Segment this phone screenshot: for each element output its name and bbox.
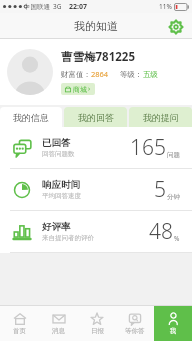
staticText: 问题 (167, 151, 180, 159)
staticText: 11% (159, 2, 172, 11)
staticText: 165 (130, 133, 166, 162)
button[interactable]: Settings (166, 17, 185, 36)
button[interactable]: 日报 (78, 306, 116, 341)
button[interactable]: 我 (154, 306, 192, 341)
staticText: 我 (170, 327, 177, 335)
staticText: 中国联通 (24, 3, 50, 11)
staticText: 曹雪梅781225 (61, 49, 135, 65)
staticText: 我的回答 (78, 112, 114, 123)
staticText: 48 (149, 217, 173, 246)
staticText: 我的知道 (74, 19, 118, 33)
button[interactable]: 首页 (0, 306, 39, 341)
staticText: 消息 (52, 327, 65, 335)
staticText: 分钟 (167, 193, 180, 201)
staticText: 商城 (73, 85, 87, 94)
button[interactable]: 我的回答 (64, 107, 127, 127)
button[interactable]: 消息 (39, 306, 78, 341)
staticText: 我的信息 (13, 112, 49, 123)
button[interactable]: 我的信息 (0, 107, 62, 127)
staticText: 2864 (91, 69, 109, 79)
staticText: 财富值： (61, 70, 91, 79)
button[interactable]: 响应时间 (0, 169, 192, 210)
button[interactable]: 已回答 (0, 127, 192, 168)
staticText: 5 (154, 175, 166, 204)
staticText: 首页 (13, 327, 26, 335)
staticText: 响应时间 (42, 179, 80, 191)
button[interactable]: Profile photo (7, 49, 53, 95)
staticText: 3G (53, 2, 62, 11)
staticText: 回答问题数 (42, 150, 75, 158)
staticText: 五级 (143, 70, 158, 79)
staticText: 好评率 (42, 221, 71, 233)
staticText: › (88, 84, 91, 94)
button[interactable]: 好评率 (0, 211, 192, 252)
staticText: 已回答 (42, 137, 71, 149)
staticText: 等级： (120, 70, 143, 79)
button[interactable]: 我的提问 (129, 107, 192, 127)
staticText: 日报 (91, 327, 104, 335)
staticText: 等你答 (125, 327, 145, 335)
button[interactable]: 等你答 (116, 306, 154, 341)
staticText: 我的提问 (143, 112, 179, 123)
staticText: 平均回答速度 (42, 192, 81, 200)
staticText: 22:07 (69, 2, 87, 12)
staticText: 来自提问者的评价 (42, 234, 94, 242)
staticText: % (174, 234, 180, 243)
button[interactable]: 商城 (61, 83, 95, 95)
